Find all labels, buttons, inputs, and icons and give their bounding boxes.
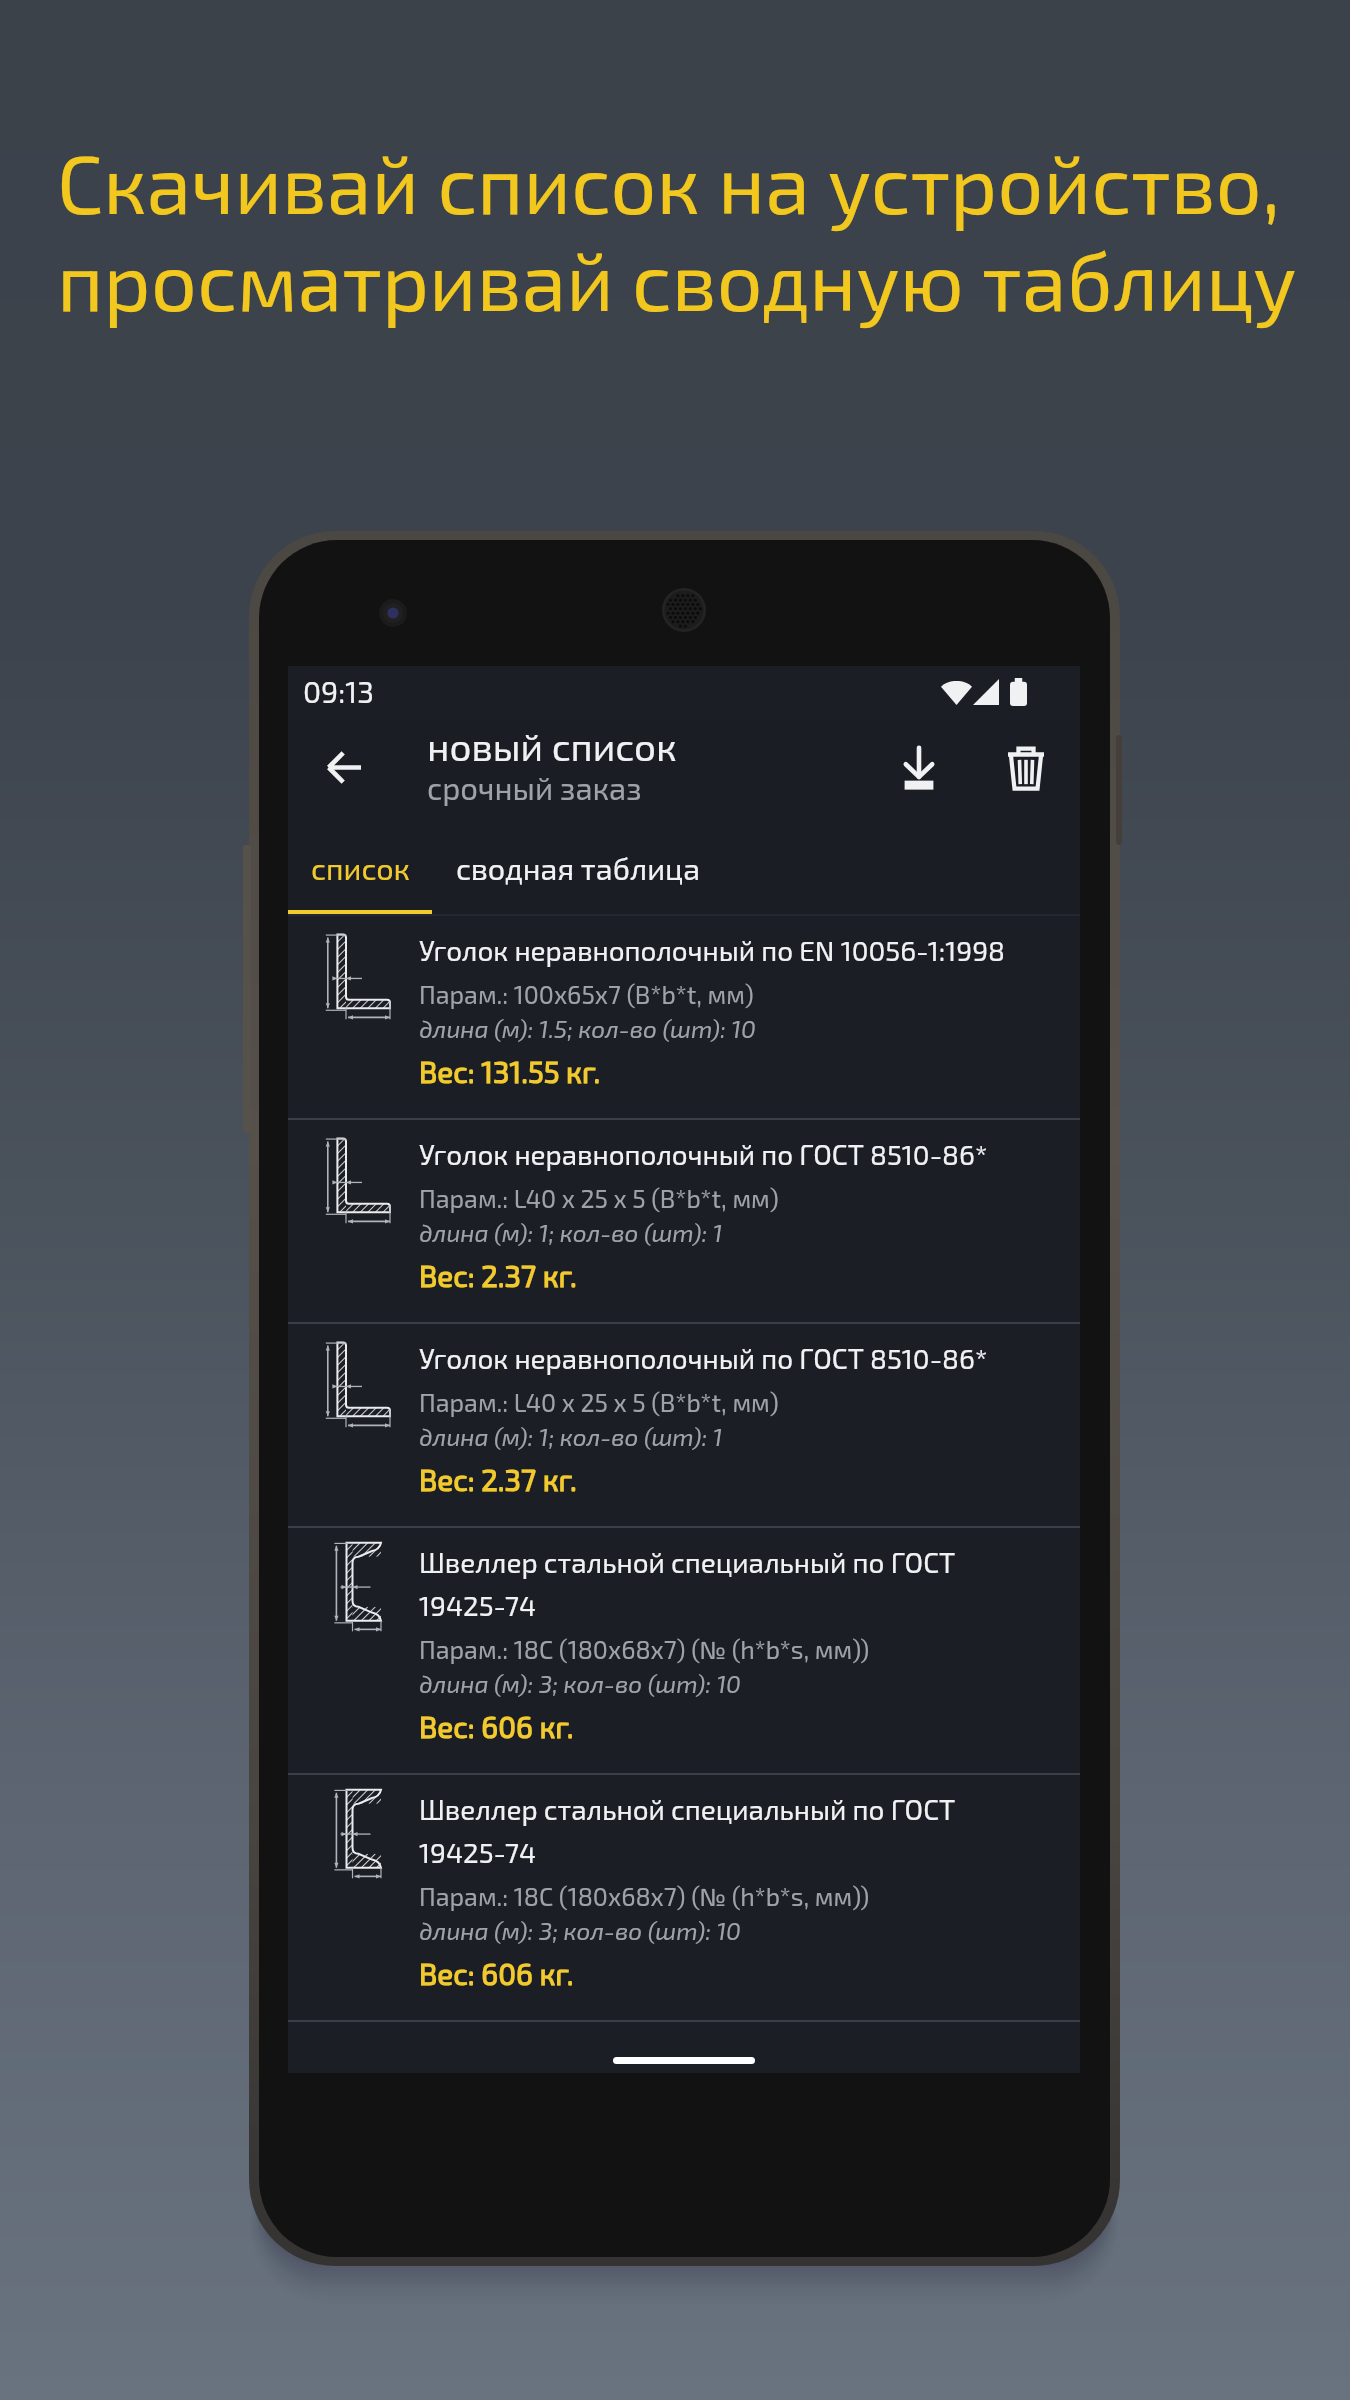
staticText: длина (м): 3; кол-во (шт): 10: [419, 1669, 741, 1698]
staticText: длина (м): 1; кол-во (шт): 1: [419, 1422, 723, 1451]
staticText: сводная таблица: [456, 850, 701, 887]
staticText: Вес: 606 кг.: [419, 1709, 574, 1744]
staticText: Скачивай список на устройство,: [57, 133, 1281, 230]
button[interactable]: Скачать: [886, 734, 952, 800]
staticText: Парам.: L40 x 25 x 5 (B*b*t, мм): [419, 1387, 779, 1417]
button[interactable]: Назад: [310, 733, 378, 801]
staticText: срочный заказ: [427, 769, 642, 806]
button[interactable]: Швеллер стальной специальный по ГОСТ 194…: [288, 1775, 1080, 2020]
button[interactable]: список: [288, 828, 432, 908]
staticText: Уголок неравнополочный по EN 10056-1:199…: [419, 933, 1005, 966]
staticText: длина (м): 1; кол-во (шт): 1: [419, 1218, 723, 1247]
staticText: 09:13: [303, 673, 374, 709]
staticText: Вес: 2.37 кг.: [419, 1462, 577, 1497]
staticText: длина (м): 1.5; кол-во (шт): 10: [419, 1014, 756, 1043]
staticText: Швеллер стальной специальный по ГОСТ 194…: [419, 1792, 1039, 1868]
staticText: Вес: 2.37 кг.: [419, 1258, 577, 1293]
staticText: Парам.: L40 x 25 x 5 (B*b*t, мм): [419, 1183, 779, 1213]
staticText: Вес: 131.55 кг.: [419, 1054, 601, 1089]
button[interactable]: сводная таблица: [432, 828, 725, 908]
staticText: новый список: [427, 723, 677, 769]
staticText: список: [311, 850, 410, 887]
button[interactable]: Удалить: [993, 734, 1059, 800]
staticText: Вес: 606 кг.: [419, 1956, 574, 1991]
staticText: Парам.: 18С (180x68x7) (№ (h*b*s, мм)): [419, 1634, 870, 1664]
staticText: просматривай сводную таблицу: [57, 230, 1297, 327]
button[interactable]: Уголок неравнополочный по EN 10056-1:199…: [288, 916, 1080, 1118]
staticText: Швеллер стальной специальный по ГОСТ 194…: [419, 1545, 1039, 1621]
button[interactable]: Уголок неравнополочный по ГОСТ 8510-86*: [288, 1324, 1080, 1526]
button[interactable]: Уголок неравнополочный по ГОСТ 8510-86*: [288, 1120, 1080, 1322]
staticText: Уголок неравнополочный по ГОСТ 8510-86*: [419, 1341, 988, 1374]
staticText: Уголок неравнополочный по ГОСТ 8510-86*: [419, 1137, 988, 1170]
staticText: Парам.: 18С (180x68x7) (№ (h*b*s, мм)): [419, 1881, 870, 1911]
staticText: длина (м): 3; кол-во (шт): 10: [419, 1916, 741, 1945]
button[interactable]: Швеллер стальной специальный по ГОСТ 194…: [288, 1528, 1080, 1773]
staticText: Парам.: 100x65x7 (B*b*t, мм): [419, 979, 754, 1009]
